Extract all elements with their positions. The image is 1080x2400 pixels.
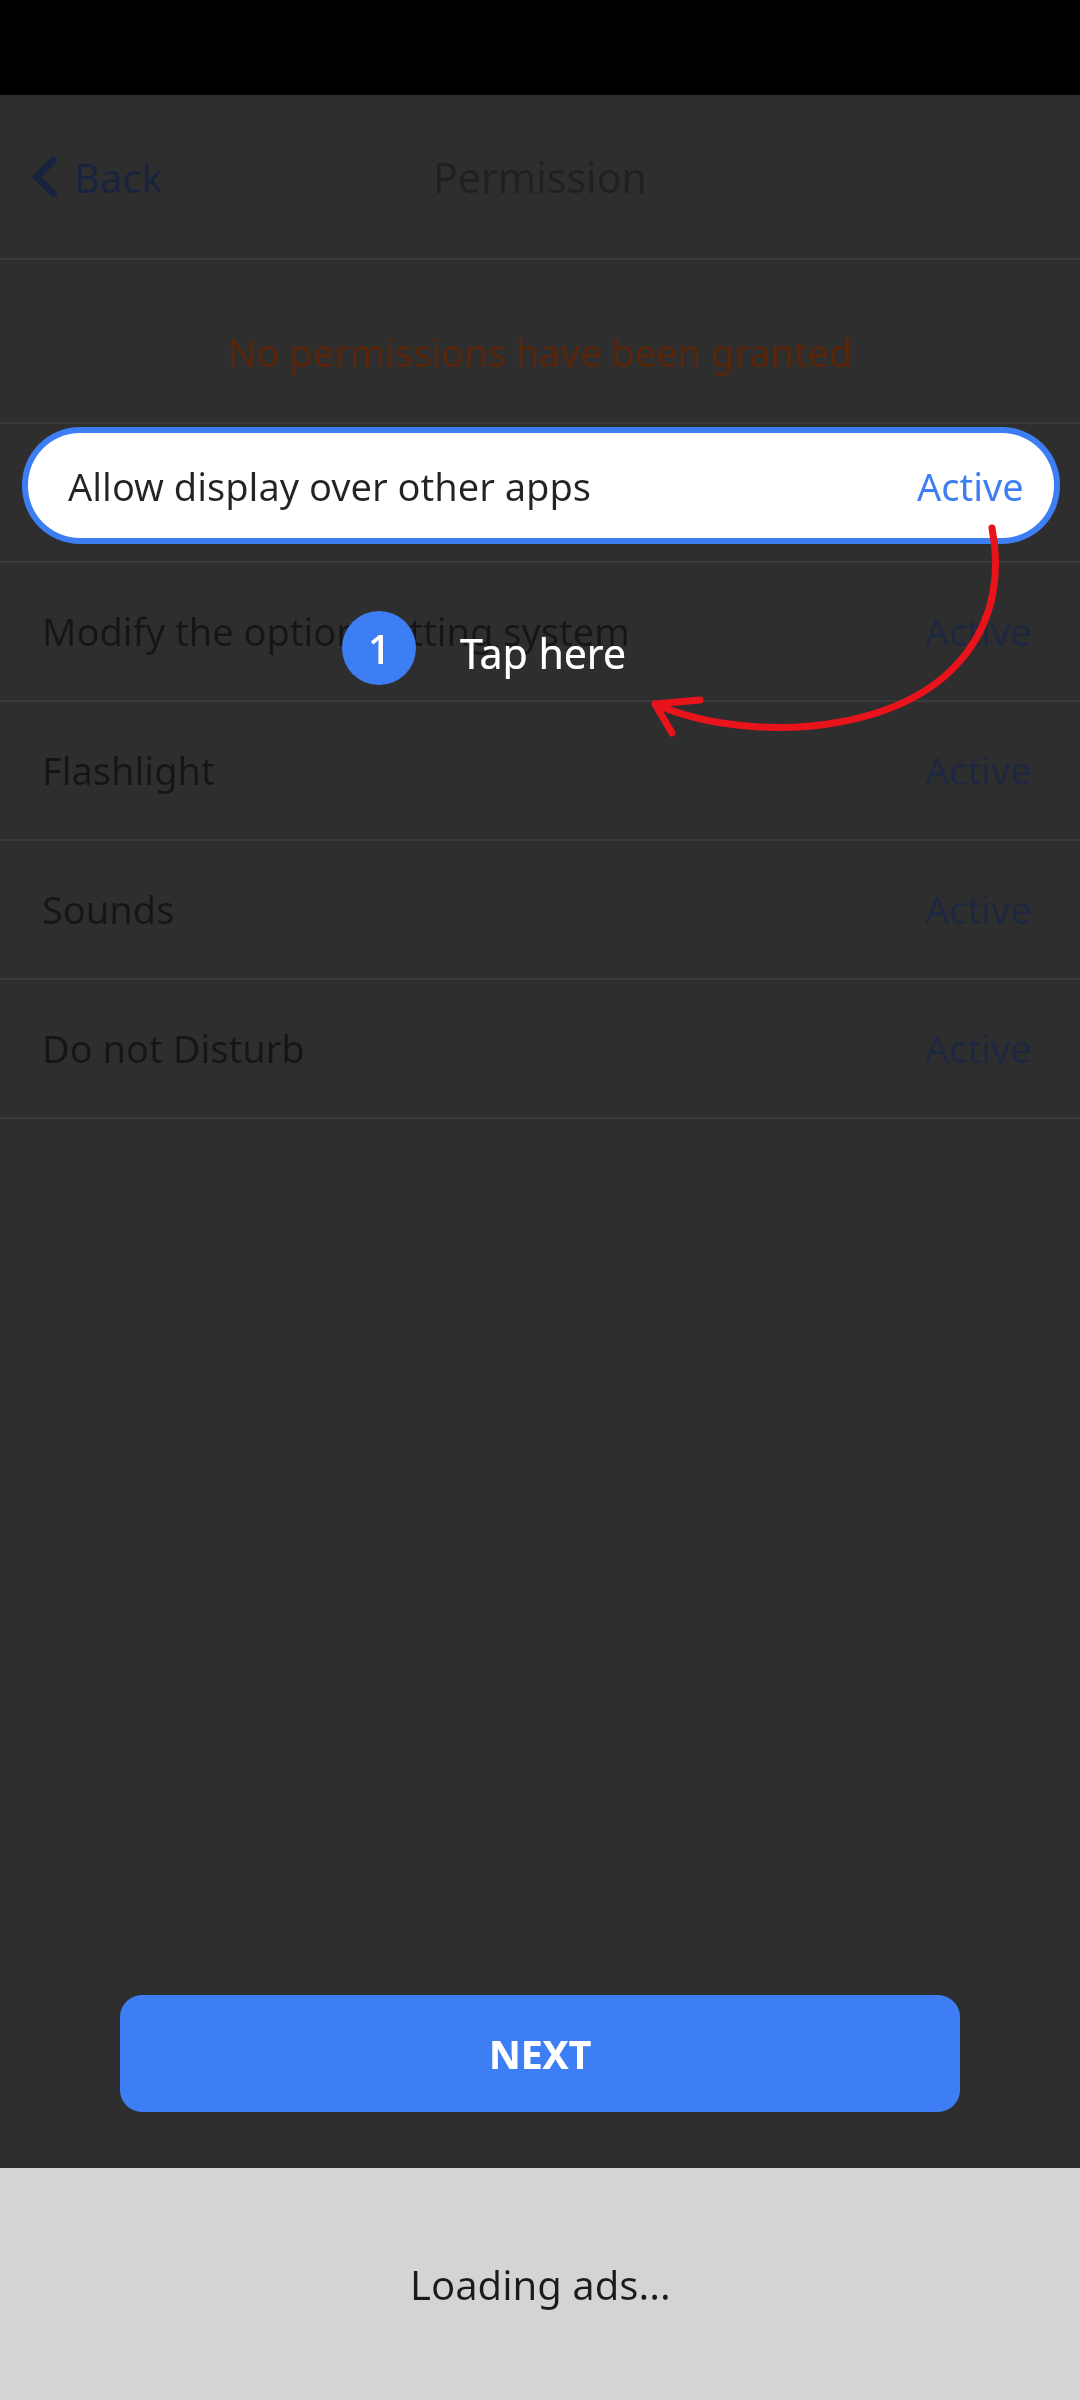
other: Step 1 bbox=[342, 611, 416, 685]
staticText: Allow display over other apps bbox=[68, 460, 591, 512]
button[interactable]: Back bbox=[22, 140, 171, 214]
button[interactable]: NEXT bbox=[120, 1995, 960, 2112]
staticText: Sounds bbox=[42, 883, 175, 935]
staticText: Permission bbox=[433, 149, 647, 205]
button[interactable]: Flashlight bbox=[0, 700, 1080, 839]
staticText: 1 bbox=[368, 621, 391, 675]
staticText: Tap here bbox=[460, 625, 627, 681]
staticText: Allow display over other apps bbox=[42, 466, 565, 518]
staticText: NEXT bbox=[489, 2027, 592, 2080]
button[interactable]: Allow display over other apps bbox=[22, 427, 1060, 544]
staticText: Flashlight bbox=[42, 744, 215, 796]
button[interactable]: Allow display over other apps bbox=[0, 422, 1080, 561]
staticText: Active bbox=[925, 466, 1032, 518]
staticText: Active bbox=[925, 1022, 1032, 1074]
button[interactable]: Modify the option setting system bbox=[0, 561, 1080, 700]
staticText: Do not Disturb bbox=[42, 1022, 305, 1074]
staticText: Back bbox=[74, 150, 163, 204]
staticText: Active bbox=[917, 460, 1024, 512]
staticText: Modify the option setting system bbox=[42, 605, 630, 657]
staticText: Loading ads... bbox=[410, 2257, 671, 2311]
staticText: No permissions have been granted bbox=[0, 326, 1080, 378]
staticText: Active bbox=[925, 744, 1032, 796]
staticText: Active bbox=[925, 605, 1032, 657]
button[interactable]: Do not Disturb bbox=[0, 978, 1080, 1117]
staticText: Active bbox=[925, 883, 1032, 935]
